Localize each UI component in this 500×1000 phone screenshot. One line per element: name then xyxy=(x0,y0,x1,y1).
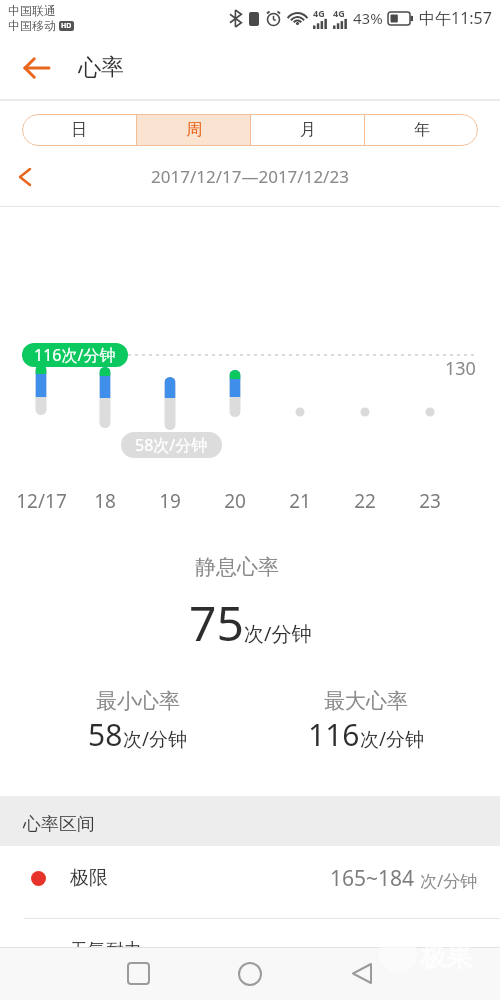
button[interactable]: 2017/12/17—2017/12/23 xyxy=(151,165,349,188)
staticText: 最小心率 xyxy=(96,688,180,714)
staticText: 19 xyxy=(159,488,181,514)
staticText: 年 xyxy=(414,120,430,140)
staticText: 静息心率 xyxy=(195,554,279,580)
staticText: 58次/分钟 xyxy=(135,434,208,456)
staticText: 43% xyxy=(353,8,383,28)
staticText: HD xyxy=(61,21,72,31)
button[interactable] xyxy=(93,947,183,1000)
button[interactable] xyxy=(10,36,62,99)
staticText: 中午11:57 xyxy=(419,7,492,29)
staticText: 月 xyxy=(300,120,316,140)
staticText: 心率 xyxy=(78,53,124,82)
staticText: 4G xyxy=(313,7,325,19)
staticText: 次/分钟 xyxy=(420,869,478,892)
staticText: 4G xyxy=(333,7,345,19)
staticText: 最大心率 xyxy=(324,688,408,714)
staticText: 极果 xyxy=(420,941,472,974)
staticText: 165~184 xyxy=(330,864,420,893)
button[interactable]: 周 xyxy=(137,114,250,146)
staticText: 21 xyxy=(289,488,311,514)
staticText: 中国移动 xyxy=(8,18,56,33)
button[interactable] xyxy=(205,947,295,1000)
staticText: 次/分钟 xyxy=(360,726,425,752)
button[interactable]: 年 xyxy=(365,114,478,146)
button[interactable]: 日 xyxy=(22,114,136,146)
staticText: 58 xyxy=(88,714,123,755)
button[interactable]: 极限 xyxy=(0,846,500,910)
staticText: 极限 xyxy=(70,866,108,890)
staticText: 130 xyxy=(445,356,476,381)
staticText: 18 xyxy=(94,488,116,514)
staticText: 日 xyxy=(71,120,87,140)
staticText: 20 xyxy=(224,488,246,514)
staticText: 23 xyxy=(419,488,441,514)
staticText: 116 xyxy=(308,714,360,755)
staticText: 周 xyxy=(186,120,202,140)
staticText: 心率区间 xyxy=(23,813,95,836)
staticText: 中国联通 xyxy=(8,3,56,18)
staticText: 次/分钟 xyxy=(244,620,312,647)
staticText: 12/17 xyxy=(16,488,67,514)
staticText: 次/分钟 xyxy=(123,726,188,752)
staticText: 无氧耐力 xyxy=(70,939,142,962)
button[interactable] xyxy=(317,947,407,1000)
button[interactable]: 月 xyxy=(251,114,364,146)
staticText: 116次/分钟 xyxy=(34,344,116,366)
staticText: 22 xyxy=(354,488,376,514)
button[interactable] xyxy=(0,146,44,206)
staticText: 75 xyxy=(189,590,244,655)
